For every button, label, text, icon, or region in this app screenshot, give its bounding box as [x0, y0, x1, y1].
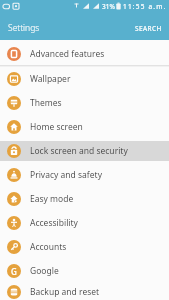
staticText: Home screen	[30, 121, 83, 133]
staticText: Settings	[8, 22, 40, 34]
staticText: Backup and reset	[30, 286, 100, 298]
staticText: Wallpaper	[30, 73, 71, 85]
button[interactable]: Themes	[0, 91, 169, 115]
staticText: G	[11, 266, 17, 277]
button[interactable]: Backup and reset	[0, 283, 169, 300]
button[interactable]: Wallpaper	[0, 67, 169, 91]
button[interactable]: Privacy and safety	[0, 163, 169, 187]
staticText: Lock screen and security	[30, 145, 128, 157]
staticText: SEARCH	[135, 24, 162, 33]
staticText: 31%	[102, 2, 115, 11]
staticText: Advanced features	[30, 48, 105, 60]
staticText: Easy mode	[30, 193, 74, 205]
button[interactable]: Lock screen and security	[0, 139, 169, 163]
staticText: Accounts	[30, 241, 67, 253]
button[interactable]: Accounts	[0, 235, 169, 259]
staticText: Accessibility	[30, 217, 78, 229]
staticText: Themes	[30, 97, 62, 109]
staticText: Privacy and safety	[30, 169, 102, 181]
staticText: 11:55 a.m.	[123, 2, 167, 11]
button[interactable]: Advanced features	[0, 42, 169, 65]
button[interactable]: Accessibility	[0, 211, 169, 235]
button[interactable]: Easy mode	[0, 187, 169, 211]
button[interactable]: Home screen	[0, 115, 169, 139]
button[interactable]: G	[0, 259, 169, 283]
button[interactable]: SEARCH	[135, 24, 162, 33]
staticText: Google	[30, 265, 59, 277]
